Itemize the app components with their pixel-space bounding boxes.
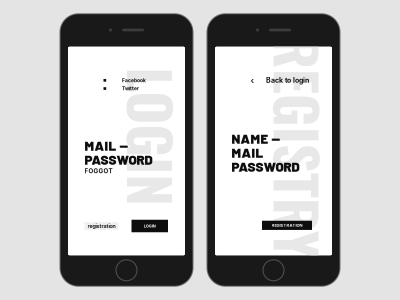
staticText: NAME — xyxy=(231,130,280,146)
button[interactable]: registration xyxy=(84,222,118,230)
staticText: MAIL xyxy=(231,144,263,160)
button[interactable]: Facebook xyxy=(103,76,145,84)
staticText: LOGIN xyxy=(83,95,222,179)
staticText: MAIL — xyxy=(84,137,128,153)
button[interactable]: ‹ xyxy=(250,76,309,85)
staticText: PASSWORD xyxy=(231,158,299,174)
staticText: Back to login xyxy=(266,76,309,84)
staticText: registration xyxy=(87,223,115,229)
staticText: PASSWORD xyxy=(84,151,152,167)
staticText: LOGIN xyxy=(144,224,156,228)
button[interactable]: LOGIN xyxy=(131,220,168,232)
staticText: Twitter xyxy=(122,86,139,92)
staticText: ‹ xyxy=(250,75,254,86)
staticText: REGISTRATION xyxy=(271,223,302,228)
staticText: FOGGOT xyxy=(84,167,112,175)
staticText: Facebook xyxy=(122,77,146,83)
button[interactable]: Twitter xyxy=(103,84,145,93)
staticText: REGISTRY xyxy=(187,105,400,189)
button[interactable]: REGISTRATION xyxy=(262,221,312,230)
